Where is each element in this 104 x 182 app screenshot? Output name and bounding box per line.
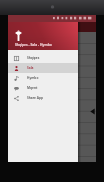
button[interactable]: Shqipes: [8, 53, 78, 63]
button[interactable]: Sala: [8, 63, 78, 73]
button[interactable]: Mqent: [8, 83, 78, 93]
staticText: Sala: [27, 66, 34, 70]
button[interactable]: [8, 15, 96, 162]
button[interactable]: Hymbo: [8, 73, 78, 83]
staticText: Mqent: [27, 86, 38, 90]
staticText: Shqipes - Sala - Hymbo: [15, 42, 52, 46]
staticText: Hymbo: [27, 76, 39, 80]
button[interactable]: Share App: [8, 93, 78, 103]
staticText: Share App: [27, 96, 44, 100]
staticText: Shqipes: [27, 56, 40, 60]
